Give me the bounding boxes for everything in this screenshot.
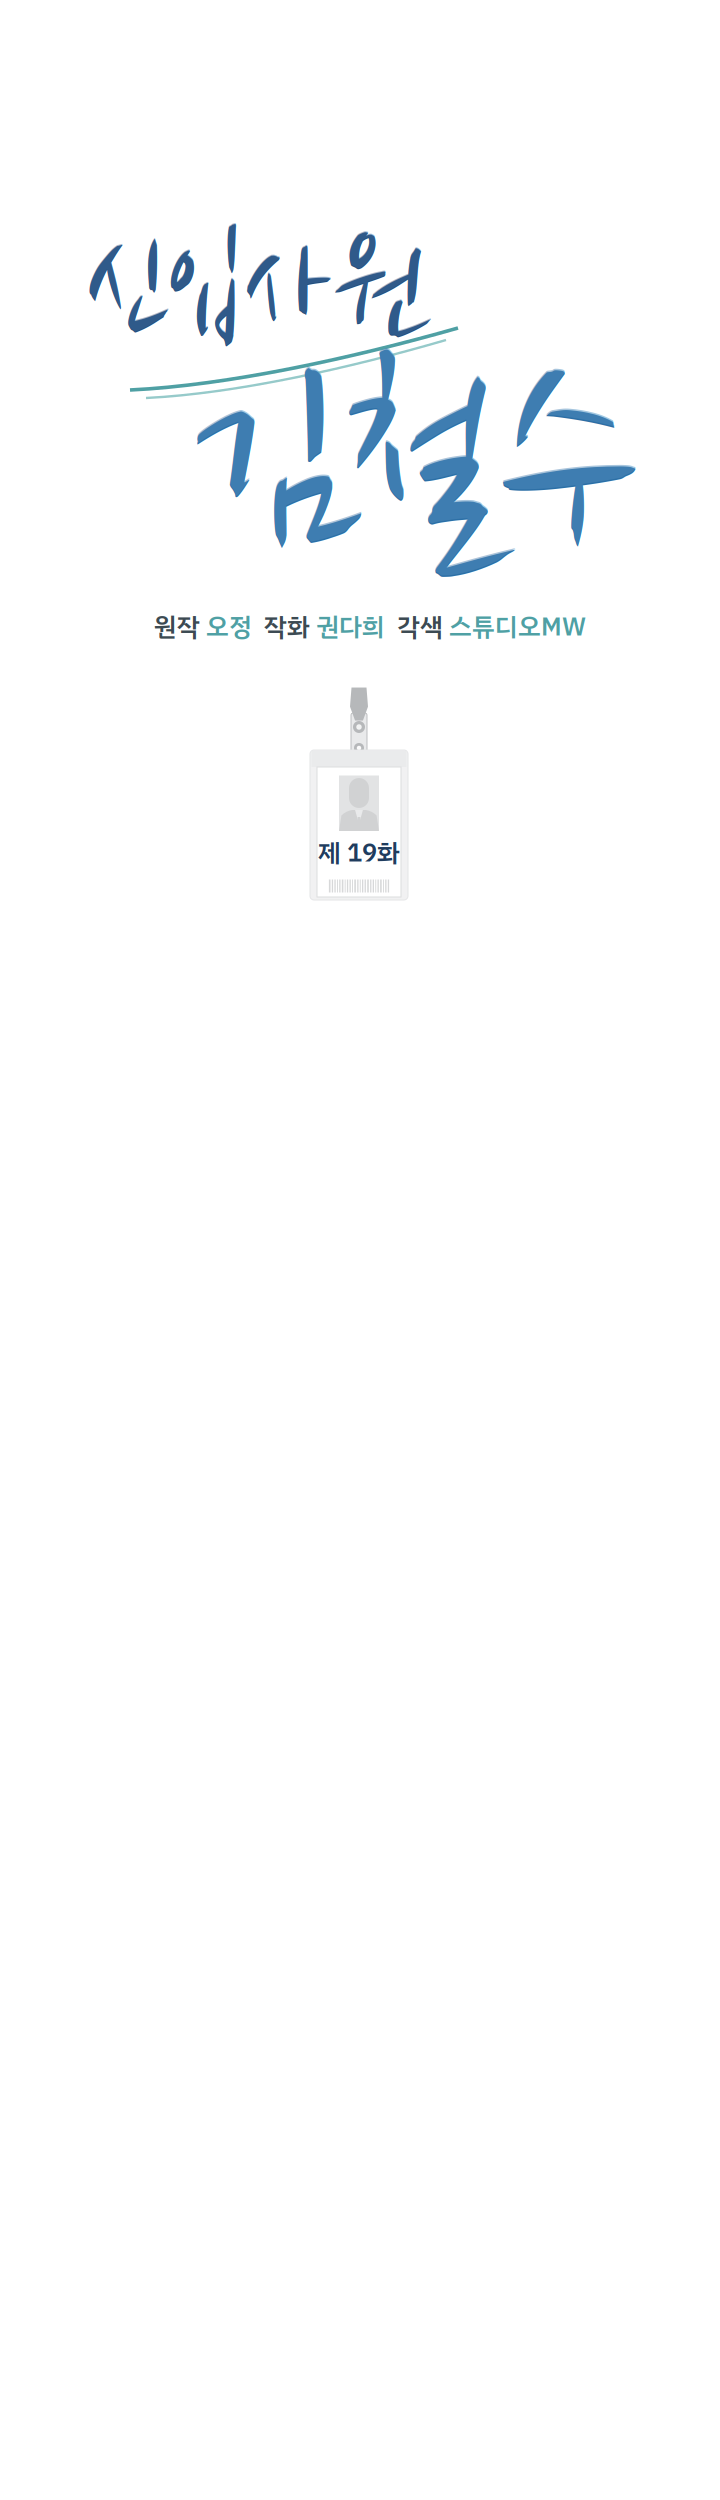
- staticText: 스튜디오MW: [449, 608, 586, 646]
- staticText: 김철수: [190, 346, 637, 590]
- staticText: 신입사원: [85, 220, 429, 362]
- staticText: 원작: [154, 608, 206, 646]
- staticText: 제 19화: [318, 834, 400, 872]
- staticText: 작화: [264, 608, 316, 646]
- staticText: 각색: [397, 608, 449, 646]
- staticText: 김철수: [190, 348, 637, 592]
- staticText: 권다희: [316, 608, 385, 646]
- staticText: 신입사원: [85, 221, 429, 363]
- staticText: 오정: [206, 608, 252, 646]
